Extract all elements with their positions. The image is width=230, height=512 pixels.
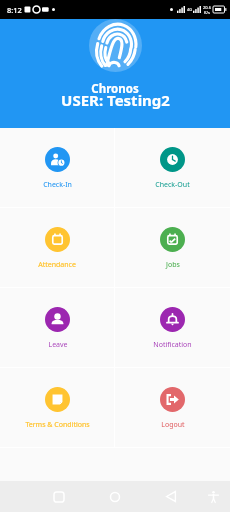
button[interactable]: Check-In	[0, 128, 114, 207]
staticText: 4G	[187, 7, 193, 12]
staticText: Check-In	[43, 180, 72, 190]
staticText: Jobs	[166, 260, 180, 270]
button[interactable]: Check-Out	[115, 128, 230, 207]
staticText: Chronos	[91, 81, 139, 97]
staticText: 20.6 K/s	[203, 5, 211, 15]
button[interactable]: Leave	[0, 288, 114, 367]
staticText: Check-Out	[155, 180, 190, 190]
button[interactable]: Jobs	[115, 208, 230, 287]
staticText: USER: Testing2	[61, 90, 170, 110]
button[interactable]: Recents	[42, 481, 75, 512]
button[interactable]: Back	[155, 481, 187, 512]
button[interactable]: Notification	[115, 288, 230, 367]
staticText: 8:12	[7, 5, 22, 15]
staticText: Leave	[48, 340, 68, 350]
button[interactable]: Terms & Conditions	[0, 368, 114, 447]
button[interactable]: Logout	[115, 368, 230, 447]
staticText: Notification	[153, 340, 192, 350]
staticText: Logout	[161, 420, 185, 430]
staticText: Terms & Conditions	[25, 420, 90, 430]
button[interactable]: Home	[98, 481, 131, 512]
button[interactable]: Attendance	[0, 208, 114, 287]
staticText: Attendance	[38, 260, 76, 270]
